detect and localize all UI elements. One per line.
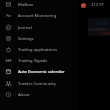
staticText: Journal [18, 25, 32, 31]
button[interactable]: Auto Economic calendar [0, 66, 110, 77]
staticText: 1.0934 [96, 21, 109, 26]
button[interactable]: Trading applications [0, 44, 110, 55]
button[interactable]: Mailbox [0, 0, 110, 10]
staticText: About [18, 92, 30, 98]
staticText: Settings [18, 36, 34, 42]
staticText: Trading Signals [18, 58, 48, 64]
button[interactable]: Settings [0, 33, 110, 44]
button[interactable]: Journal [0, 22, 110, 33]
staticText: Auto Economic calendar [18, 69, 65, 75]
button[interactable]: Trading Signals [0, 55, 110, 66]
staticText: Mailbox [18, 2, 34, 8]
staticText: 1.0938 [98, 31, 110, 36]
staticText: Trading applications [18, 47, 57, 53]
button[interactable]: Traders Community [0, 78, 110, 89]
staticText: 1.0936 [97, 27, 110, 32]
staticText: -313.97 [90, 2, 104, 7]
button[interactable]: About [0, 89, 110, 100]
button[interactable]: Account Monitoring [0, 10, 110, 21]
staticText: Traders Community [18, 81, 56, 87]
staticText: EURUSD [88, 27, 104, 32]
staticText: Account Monitoring [18, 13, 57, 19]
